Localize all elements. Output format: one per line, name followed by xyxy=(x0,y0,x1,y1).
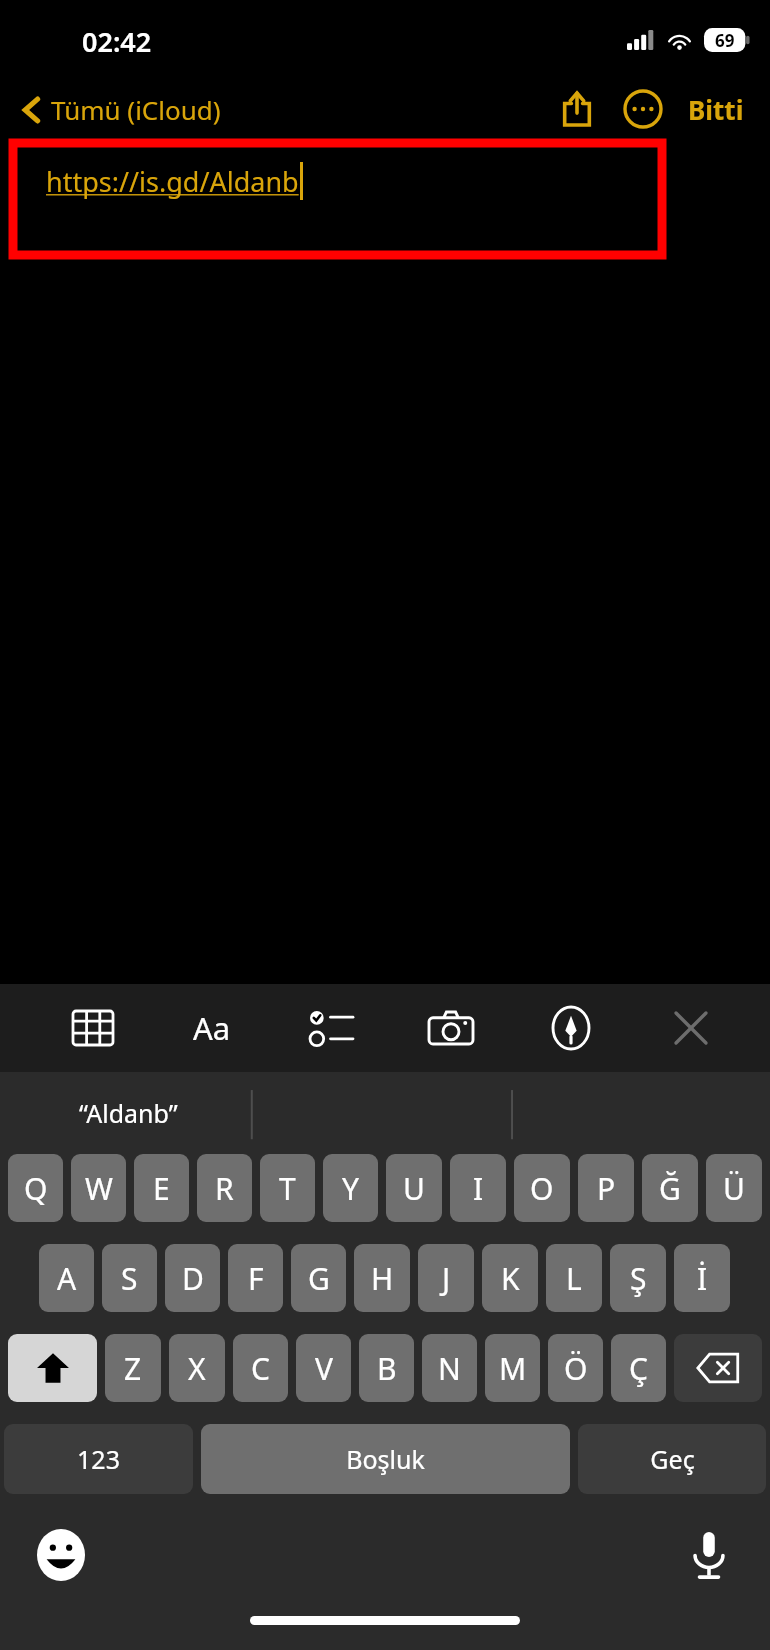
button[interactable]: Emoji xyxy=(28,1522,94,1588)
button[interactable]: Table xyxy=(62,993,124,1063)
button[interactable]: Tümü (iCloud) xyxy=(16,88,227,131)
staticText: Ü xyxy=(723,1168,745,1209)
staticText: Q xyxy=(24,1168,48,1209)
staticText: Tümü (iCloud) xyxy=(51,92,221,127)
button[interactable]: G xyxy=(291,1244,346,1312)
staticText: 02:42 xyxy=(82,23,152,60)
staticText: X xyxy=(188,1348,206,1389)
staticText: U xyxy=(403,1168,425,1209)
staticText: V xyxy=(315,1348,333,1389)
staticText: Boşluk xyxy=(346,1442,425,1476)
staticText: K xyxy=(501,1258,520,1299)
staticText: L xyxy=(566,1258,582,1299)
staticText: İ xyxy=(697,1258,708,1299)
staticText: W xyxy=(85,1168,113,1209)
button[interactable]: Shift xyxy=(8,1334,97,1402)
button[interactable]: A xyxy=(39,1244,94,1312)
button[interactable]: Share xyxy=(550,82,604,136)
button[interactable]: Ü xyxy=(706,1154,762,1222)
button[interactable]: Markup xyxy=(540,993,602,1063)
button[interactable]: P xyxy=(578,1154,634,1222)
button[interactable]: V xyxy=(296,1334,351,1402)
button[interactable]: Geç xyxy=(578,1424,766,1494)
staticText: Ş xyxy=(630,1258,647,1299)
button[interactable]: Y xyxy=(323,1154,378,1222)
button[interactable]: Backspace xyxy=(674,1334,762,1402)
button[interactable]: D xyxy=(165,1244,220,1312)
button[interactable]: X xyxy=(169,1334,225,1402)
button[interactable]: L xyxy=(546,1244,602,1312)
button[interactable]: U xyxy=(386,1154,442,1222)
staticText: Bitti xyxy=(688,92,744,127)
button[interactable]: E xyxy=(134,1154,189,1222)
button[interactable]: Checklist xyxy=(300,993,362,1063)
staticText: J xyxy=(442,1258,451,1299)
staticText: E xyxy=(153,1168,170,1209)
staticText: R xyxy=(215,1168,234,1209)
button[interactable]: Format xyxy=(181,993,243,1063)
button[interactable]: Ğ xyxy=(642,1154,698,1222)
button[interactable]: https://is.gd/Aldanb xyxy=(46,162,302,200)
button[interactable]: Ş xyxy=(610,1244,666,1312)
staticText: H xyxy=(371,1258,394,1299)
button[interactable]: 123 xyxy=(4,1424,193,1494)
staticText: Ğ xyxy=(659,1168,681,1209)
staticText: N xyxy=(438,1348,461,1389)
staticText: 69 xyxy=(715,29,735,52)
button[interactable]: T xyxy=(260,1154,315,1222)
staticText: Geç xyxy=(650,1442,695,1476)
staticText: Ö xyxy=(564,1348,588,1389)
button[interactable]: Ö xyxy=(548,1334,603,1402)
button[interactable]: C xyxy=(233,1334,288,1402)
button[interactable]: M xyxy=(485,1334,540,1402)
button[interactable]: İ xyxy=(674,1244,730,1312)
staticText: F xyxy=(248,1258,264,1299)
button[interactable]: H xyxy=(354,1244,410,1312)
button[interactable]: N xyxy=(422,1334,477,1402)
button[interactable]: K xyxy=(482,1244,538,1312)
staticText: D xyxy=(182,1258,204,1299)
button[interactable]: B xyxy=(359,1334,414,1402)
button[interactable]: O xyxy=(514,1154,570,1222)
staticText: I xyxy=(473,1168,484,1209)
staticText: S xyxy=(121,1258,138,1299)
button[interactable]: W xyxy=(71,1154,126,1222)
button[interactable]: Bitti xyxy=(680,84,752,135)
staticText: Ç xyxy=(629,1348,648,1389)
staticText: T xyxy=(279,1168,296,1209)
button[interactable]: Dictation xyxy=(676,1522,742,1588)
button[interactable]: Z xyxy=(105,1334,161,1402)
staticText: “Aldanb” xyxy=(79,1096,178,1130)
button[interactable]: Q xyxy=(8,1154,63,1222)
button[interactable]: I xyxy=(450,1154,506,1222)
staticText: B xyxy=(377,1348,397,1389)
button[interactable]: More options xyxy=(616,82,670,136)
staticText: Y xyxy=(342,1168,359,1209)
staticText: Z xyxy=(124,1348,142,1389)
button[interactable]: Boşluk xyxy=(201,1424,570,1494)
staticText: Aa xyxy=(193,1007,231,1049)
staticText: C xyxy=(251,1348,270,1389)
staticText: M xyxy=(499,1348,527,1389)
staticText: A xyxy=(57,1258,77,1299)
button[interactable]: J xyxy=(418,1244,474,1312)
button[interactable]: S xyxy=(102,1244,157,1312)
button[interactable]: R xyxy=(197,1154,252,1222)
staticText: P xyxy=(597,1168,616,1209)
staticText: 123 xyxy=(77,1442,120,1476)
staticText: G xyxy=(308,1258,330,1299)
button[interactable]: Ç xyxy=(611,1334,666,1402)
button[interactable]: Camera xyxy=(420,993,482,1063)
button[interactable]: F xyxy=(228,1244,283,1312)
staticText: O xyxy=(530,1168,554,1209)
button[interactable]: Close keyboard xyxy=(660,993,722,1063)
staticText: https://is.gd/Aldanb xyxy=(46,163,299,200)
